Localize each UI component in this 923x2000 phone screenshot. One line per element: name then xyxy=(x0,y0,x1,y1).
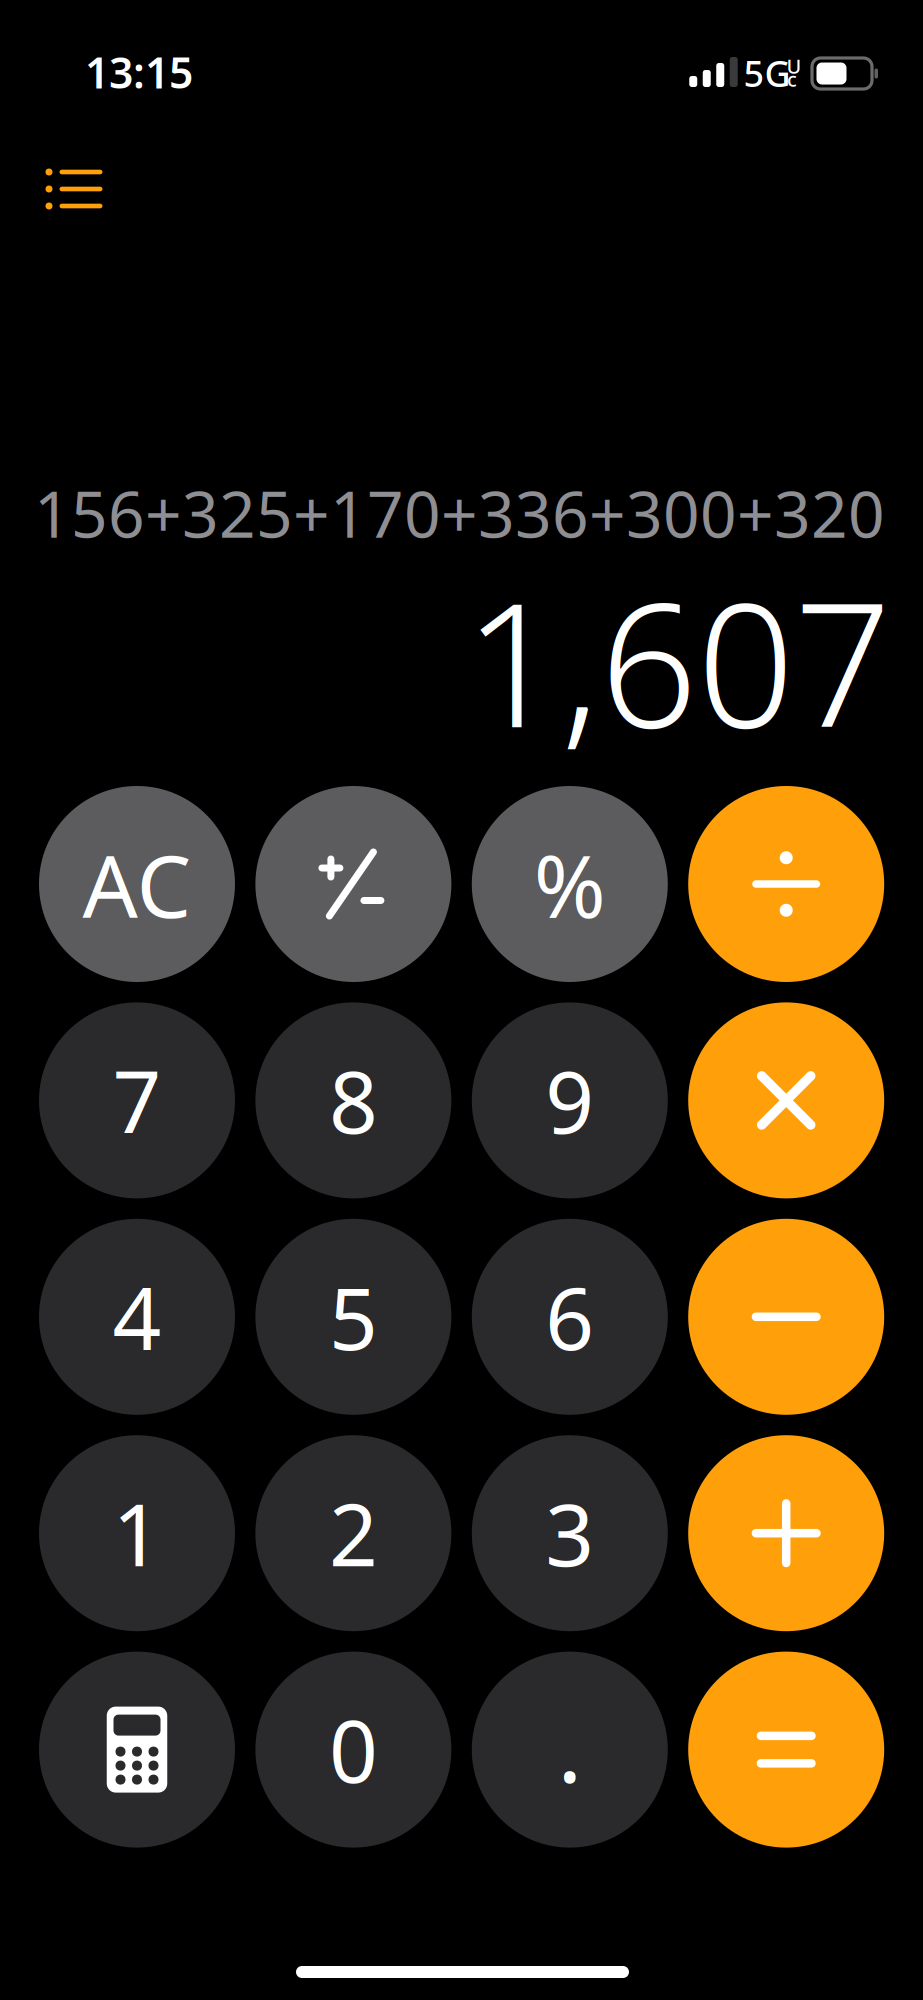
staticText: 6 xyxy=(545,1260,594,1373)
button[interactable]: 5 xyxy=(255,1219,451,1415)
staticText: 1 xyxy=(112,1476,161,1590)
staticText: 3 xyxy=(545,1476,594,1590)
staticText: 5G xyxy=(743,49,790,97)
button[interactable]: 6 xyxy=(472,1219,668,1415)
button[interactable]: 9 xyxy=(472,1002,668,1198)
button[interactable]: Divide xyxy=(688,786,884,982)
staticText: . xyxy=(557,1685,582,1808)
button[interactable]: 2 xyxy=(255,1435,451,1631)
button[interactable]: 1 xyxy=(39,1435,235,1631)
staticText: c xyxy=(787,66,797,92)
button[interactable]: History xyxy=(29,151,119,227)
staticText: 1,607 xyxy=(464,548,891,774)
staticText: 8 xyxy=(329,1044,378,1157)
button[interactable]: Multiply xyxy=(688,1002,884,1198)
staticText: U xyxy=(786,53,801,79)
staticText: 7 xyxy=(112,1044,161,1157)
button[interactable]: . xyxy=(472,1652,668,1848)
staticText: 4 xyxy=(112,1260,161,1373)
button[interactable]: 8 xyxy=(255,1002,451,1198)
button[interactable]: 0 xyxy=(255,1652,451,1848)
button[interactable]: 3 xyxy=(472,1435,668,1631)
staticText: 0 xyxy=(329,1693,378,1806)
button[interactable]: Plus minus xyxy=(255,786,451,982)
staticText: 13:15 xyxy=(85,44,193,100)
button[interactable]: Plus xyxy=(688,1435,884,1631)
staticText: % xyxy=(534,826,606,942)
button[interactable]: Equals xyxy=(688,1652,884,1848)
button[interactable]: Minus xyxy=(688,1219,884,1415)
staticText: 2 xyxy=(329,1476,378,1590)
staticText: AC xyxy=(82,826,191,942)
button[interactable]: 4 xyxy=(39,1219,235,1415)
staticText: 156+325+170+336+300+320 xyxy=(34,470,885,555)
staticText: 5 xyxy=(329,1260,378,1373)
staticText: 9 xyxy=(545,1044,594,1157)
button[interactable]: AC xyxy=(39,786,235,982)
button[interactable]: Calculator mode xyxy=(39,1652,235,1848)
button[interactable]: 7 xyxy=(39,1002,235,1198)
button[interactable]: % xyxy=(472,786,668,982)
